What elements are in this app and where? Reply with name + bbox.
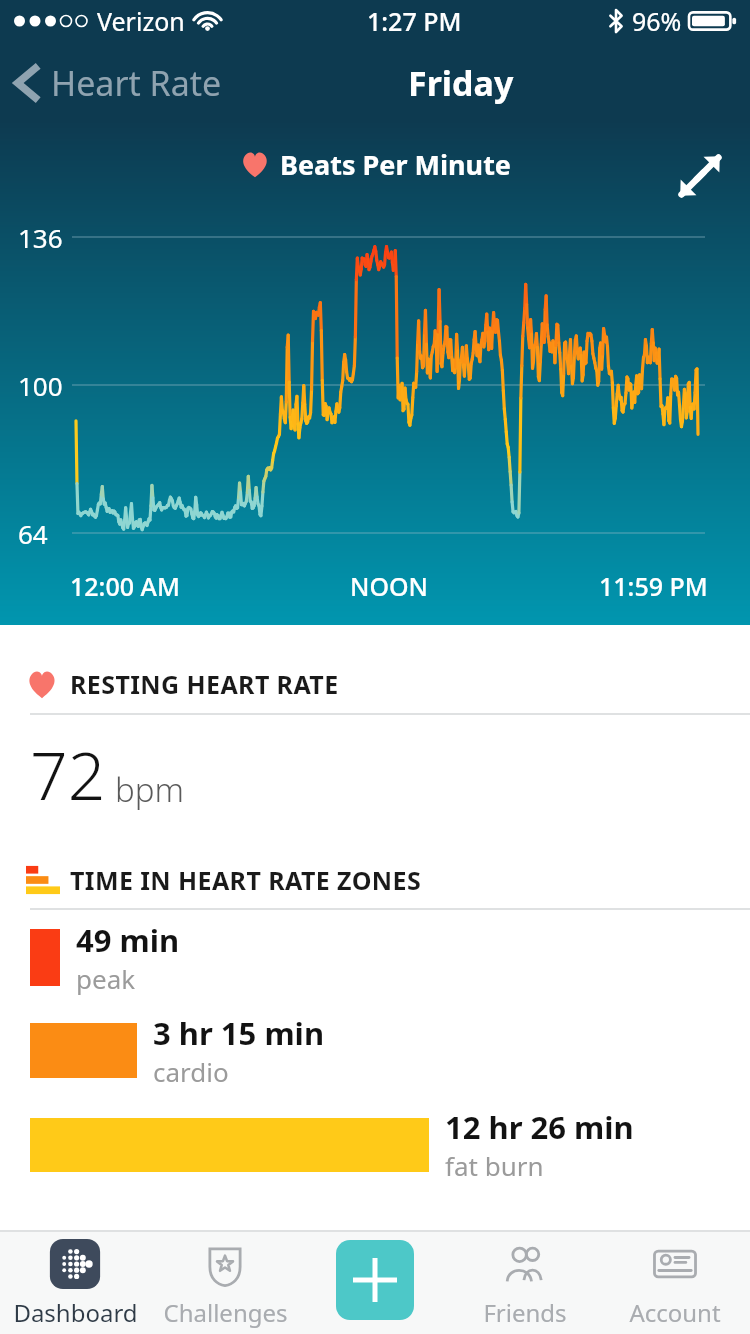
staticText: cardio [153,1054,229,1089]
staticText: RESTING HEART RATE [70,667,339,701]
button[interactable]: Expand chart [672,148,728,204]
staticText: 12 hr 26 min [445,1106,634,1148]
staticText: 49 min [76,919,180,961]
button[interactable]: 3 hr 15 min [0,1012,750,1089]
button[interactable]: 49 min [0,919,750,996]
button[interactable]: Heart Rate [0,46,234,120]
staticText: 12:00 AM [70,569,180,603]
staticText: Heart Rate [51,60,222,106]
staticText: NOON [350,569,429,603]
staticText: 3 hr 15 min [153,1012,325,1054]
staticText: Verizon [97,4,185,38]
button[interactable]: Friends [450,1232,600,1334]
button[interactable]: Challenges [150,1232,300,1334]
button[interactable]: Dashboard [0,1232,150,1334]
staticText: 136 [18,220,63,255]
staticText: Beats Per Minute [280,146,511,183]
staticText: Friends [483,1296,567,1329]
button[interactable]: Add [336,1240,414,1320]
staticText: TIME IN HEART RATE ZONES [70,863,422,897]
staticText: peak [76,961,136,996]
staticText: 100 [18,368,63,403]
staticText: 11:59 PM [599,569,708,603]
staticText: Dashboard [13,1296,138,1329]
button[interactable]: RESTING HEART RATE [0,667,750,701]
staticText: 64 [18,516,48,551]
staticText: fat burn [445,1148,544,1183]
button[interactable]: TIME IN HEART RATE ZONES [0,863,750,897]
staticText: Friday [408,60,514,106]
staticText: bpm [115,767,185,812]
button[interactable]: Account [600,1232,750,1334]
staticText: 96% [632,4,682,38]
staticText: 1:27 PM [367,4,462,38]
staticText: Challenges [163,1296,288,1329]
button[interactable]: 12 hr 26 min [0,1106,750,1183]
staticText: Account [629,1296,721,1329]
staticText: 72 [30,729,106,819]
